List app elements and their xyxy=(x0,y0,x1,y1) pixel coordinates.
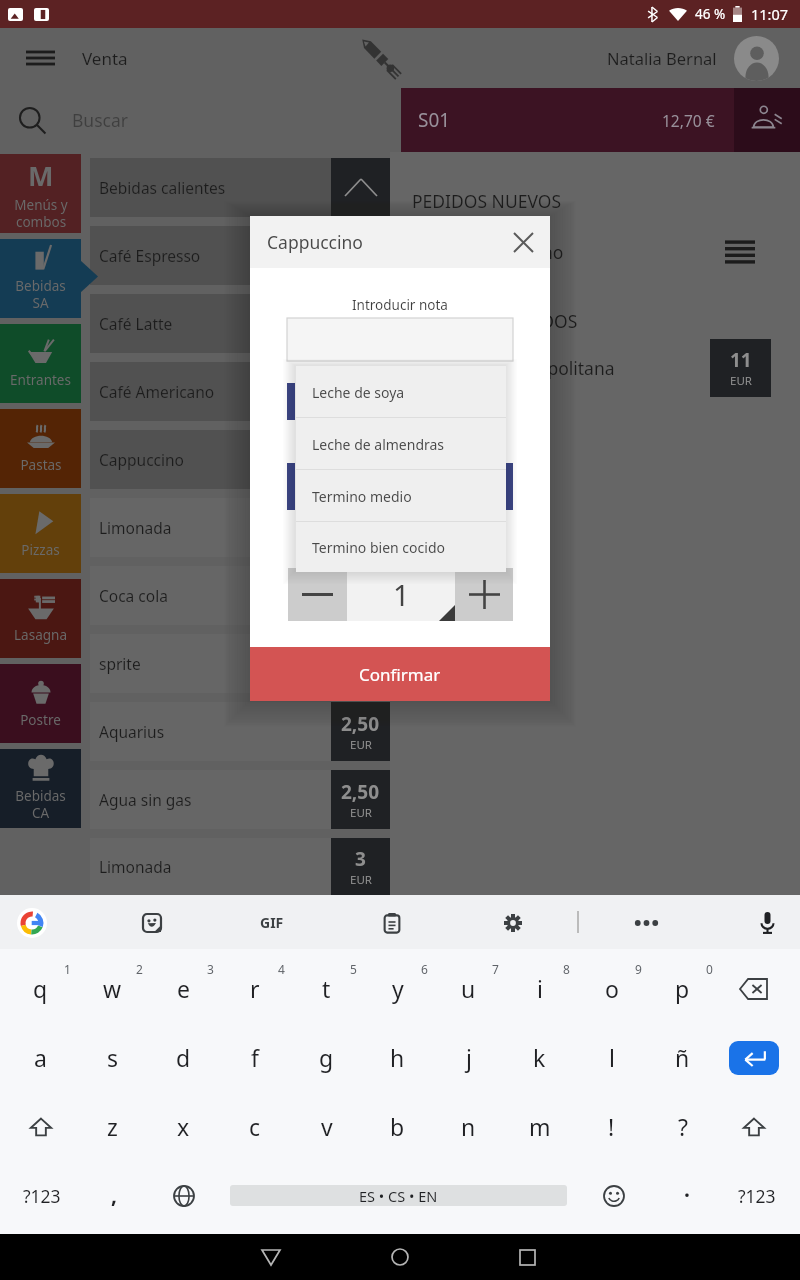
button[interactable]: u xyxy=(433,954,504,1023)
button[interactable]: Café Latte xyxy=(90,294,390,353)
staticText: ?123 xyxy=(23,1184,61,1208)
button[interactable]: Coca cola xyxy=(90,566,390,625)
button[interactable]: Assign waiter xyxy=(734,88,800,152)
button[interactable]: Confirmar xyxy=(250,647,550,701)
button[interactable]: w xyxy=(77,954,148,1023)
button[interactable]: ñ xyxy=(647,1023,718,1092)
button[interactable]: l xyxy=(576,1023,647,1092)
button[interactable]: Leche de soya xyxy=(296,366,506,418)
button[interactable]: n xyxy=(433,1092,504,1161)
button[interactable]: ?123 xyxy=(6,1161,78,1230)
staticText: Venta xyxy=(82,47,128,70)
staticText: 5 xyxy=(350,961,357,977)
button[interactable]: Agua sin gas xyxy=(90,770,390,829)
button[interactable]: Bebidas SA xyxy=(0,239,81,318)
button[interactable]: o xyxy=(576,954,647,1023)
button[interactable]: Entrantes xyxy=(0,324,81,403)
button[interactable]: k xyxy=(504,1023,575,1092)
staticText: EUR xyxy=(350,872,372,888)
button[interactable]: Cappuccino xyxy=(90,430,390,489)
button[interactable]: Enter xyxy=(718,1023,789,1092)
button[interactable]: sprite xyxy=(90,634,390,693)
button[interactable]: i xyxy=(504,954,575,1023)
staticText: g xyxy=(319,1042,334,1073)
button[interactable]: d xyxy=(148,1023,219,1092)
button[interactable]: More options xyxy=(620,896,672,949)
button[interactable]: q xyxy=(5,954,76,1023)
button[interactable]: e xyxy=(148,954,219,1023)
button[interactable]: g xyxy=(291,1023,362,1092)
button[interactable]: Backspace xyxy=(718,954,789,1023)
staticText: m xyxy=(529,1111,551,1142)
button[interactable]: Buscar xyxy=(0,88,401,152)
button[interactable]: Emoji xyxy=(578,1161,649,1230)
button[interactable]: Aquarius xyxy=(90,702,390,761)
button[interactable]: Google search xyxy=(6,896,58,949)
button[interactable]: Limonada xyxy=(90,838,390,895)
button[interactable]: j xyxy=(433,1023,504,1092)
button[interactable]: ES • CS • EN xyxy=(230,1185,567,1206)
button[interactable]: Postre xyxy=(0,664,81,743)
button[interactable]: r xyxy=(219,954,290,1023)
button[interactable]: h xyxy=(362,1023,433,1092)
button[interactable]: b xyxy=(362,1092,433,1161)
button[interactable]: y xyxy=(362,954,433,1023)
button[interactable]: Recent apps xyxy=(503,1234,551,1280)
button[interactable]: Shift xyxy=(718,1092,789,1161)
button[interactable]: f xyxy=(219,1023,290,1092)
button[interactable]: 1 x Cappuccino xyxy=(390,228,800,276)
button[interactable]: Home xyxy=(376,1234,424,1280)
button[interactable]: GIF xyxy=(246,896,298,949)
button[interactable]: Shift xyxy=(5,1092,76,1161)
staticText: 7 xyxy=(492,961,499,977)
staticText: Buscar xyxy=(72,108,129,132)
button[interactable]: Pizzas xyxy=(0,494,81,573)
button[interactable]: a xyxy=(5,1023,76,1092)
button[interactable]: ?123 xyxy=(721,1161,793,1230)
button[interactable]: Pastas xyxy=(0,409,81,488)
button[interactable]: Bebidas CA xyxy=(0,749,81,828)
button[interactable]: Café Americano xyxy=(90,362,390,421)
button[interactable]: t xyxy=(291,954,362,1023)
button[interactable]: ! xyxy=(576,1092,647,1161)
button[interactable]: Increase quantity xyxy=(455,568,513,621)
button[interactable]: Voice input xyxy=(741,896,793,949)
button[interactable]: Account xyxy=(734,36,779,81)
staticText: 3 xyxy=(207,961,214,977)
staticText: t xyxy=(322,973,331,1004)
button[interactable]: v xyxy=(291,1092,362,1161)
button[interactable]: Bebidas calientes xyxy=(90,158,390,217)
button[interactable]: 1 x Pizza Napolitana xyxy=(390,339,800,397)
staticText: e xyxy=(177,973,190,1004)
button[interactable]: Open navigation drawer xyxy=(0,28,82,88)
button[interactable]: Close xyxy=(497,216,549,268)
button[interactable]: · xyxy=(651,1161,722,1230)
button[interactable]: Decrease quantity xyxy=(288,568,347,621)
button[interactable]: ? xyxy=(647,1092,718,1161)
staticText: j xyxy=(466,1042,472,1073)
button[interactable]: Stickers xyxy=(126,896,178,949)
button[interactable]: Café Espresso xyxy=(90,226,390,285)
button[interactable]: M xyxy=(0,154,81,233)
staticText: s xyxy=(107,1042,119,1073)
button[interactable]: Termino bien cocido xyxy=(296,522,506,572)
button[interactable]: c xyxy=(219,1092,290,1161)
button[interactable]: Keyboard settings xyxy=(487,896,539,949)
button[interactable]: Limonada xyxy=(90,498,390,557)
button[interactable]: Back xyxy=(247,1234,295,1280)
staticText: Café Espresso xyxy=(99,245,390,266)
button[interactable]: Change language xyxy=(148,1161,219,1230)
button[interactable]: x xyxy=(148,1092,219,1161)
button[interactable]: p xyxy=(647,954,718,1023)
button[interactable]: s xyxy=(77,1023,148,1092)
button[interactable]: Leche de almendras xyxy=(296,418,506,470)
button[interactable]: m xyxy=(504,1092,575,1161)
button[interactable]: z xyxy=(77,1092,148,1161)
button[interactable] xyxy=(287,318,513,361)
button[interactable]: Termino medio xyxy=(296,470,506,522)
staticText: f xyxy=(251,1042,259,1073)
button[interactable]: , xyxy=(78,1161,149,1230)
staticText: PEDIDOS NUEVOS xyxy=(412,189,562,213)
button[interactable]: Lasagna xyxy=(0,579,81,658)
button[interactable]: Clipboard xyxy=(366,896,418,949)
